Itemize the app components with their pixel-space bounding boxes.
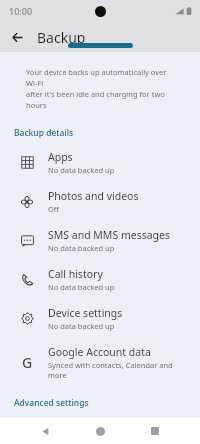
staticText: No data backed up — [48, 243, 115, 253]
staticText: No data backed up — [48, 282, 115, 292]
button[interactable] — [68, 43, 133, 48]
staticText: 10:00 — [9, 5, 33, 17]
button[interactable]: Apps — [0, 143, 200, 182]
button[interactable]: Recent apps — [144, 420, 166, 442]
button[interactable]: Device settings — [0, 299, 200, 338]
staticText: No data backed up — [48, 165, 115, 175]
button[interactable]: Back — [34, 420, 56, 442]
staticText: Call history — [48, 267, 103, 281]
staticText: Device settings — [48, 306, 123, 320]
staticText: Synced with contacts, Calendar and more — [48, 360, 186, 380]
button[interactable]: Call history — [0, 260, 200, 299]
staticText: Google Account data — [48, 345, 151, 359]
button[interactable]: G — [0, 338, 200, 387]
staticText: SMS and MMS messages — [48, 228, 170, 242]
staticText: Off — [48, 204, 60, 214]
staticText: Your device backs up automatically over … — [26, 67, 174, 110]
button[interactable]: SMS and MMS messages — [0, 221, 200, 260]
staticText: G — [22, 353, 33, 372]
staticText: Backup — [37, 28, 86, 47]
staticText: Advanced settings — [14, 397, 186, 409]
staticText: No data backed up — [48, 321, 115, 331]
button[interactable]: Photos and videos — [0, 182, 200, 221]
staticText: Backup details — [14, 127, 186, 139]
staticText: Apps — [48, 150, 73, 164]
button[interactable]: Home — [89, 420, 111, 442]
button[interactable]: Back — [4, 24, 30, 50]
staticText: Photos and videos — [48, 189, 139, 203]
